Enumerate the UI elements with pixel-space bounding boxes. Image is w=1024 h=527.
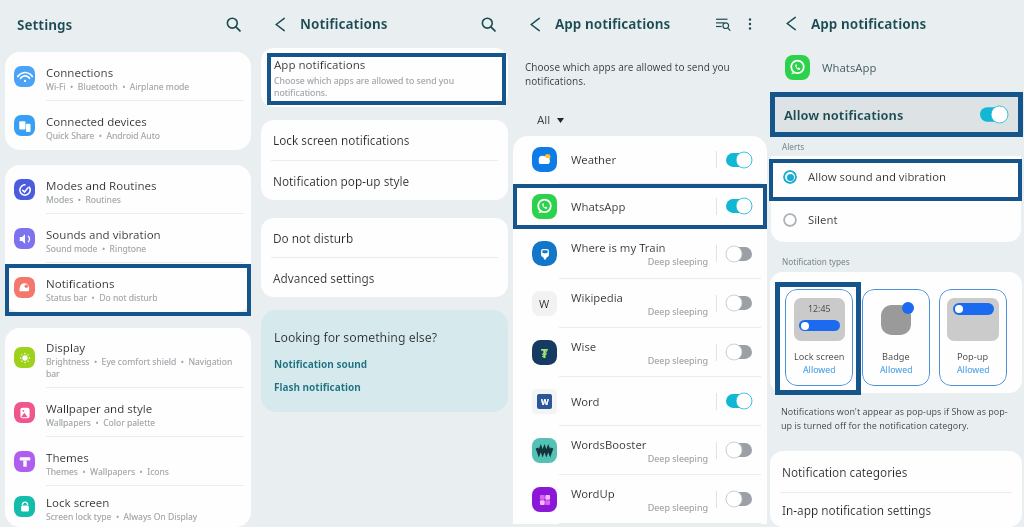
staticText: WhatsApp <box>822 60 877 75</box>
staticText: Wallpapers • Color palette <box>46 417 156 429</box>
button[interactable]: W <box>513 279 767 328</box>
button[interactable]: Notifications <box>5 263 251 312</box>
staticText: App notifications <box>811 15 927 33</box>
button[interactable]: Back <box>270 14 291 35</box>
other: Back <box>783 15 800 32</box>
staticText: Wise <box>571 339 597 354</box>
button[interactable]: Advanced settings <box>261 258 508 297</box>
button[interactable]: Off <box>726 246 752 262</box>
staticText: 12:45 <box>808 303 831 315</box>
button[interactable]: Search <box>223 14 244 35</box>
button[interactable]: On <box>980 106 1008 123</box>
staticText: All <box>537 112 551 128</box>
staticText: Notification pop-up style <box>273 173 410 189</box>
button[interactable]: Lock screen notifications <box>261 120 508 161</box>
staticText: Silent <box>808 212 838 227</box>
staticText: Choose which apps are allowed to send yo… <box>525 60 752 88</box>
button[interactable]: Back <box>781 13 802 34</box>
staticText: Allowed <box>957 364 990 376</box>
button[interactable]: Do not disturb <box>261 218 508 258</box>
staticText: W <box>539 296 550 311</box>
button[interactable]: ₮ <box>513 328 767 377</box>
button[interactable]: App notifications <box>261 48 508 107</box>
button[interactable]: Wallpaper and style <box>5 388 251 437</box>
staticText: Quick Share • Android Auto <box>46 130 160 142</box>
staticText: Deep sleeping <box>571 255 708 267</box>
other: Back <box>527 16 544 33</box>
staticText: Where is my Train <box>571 240 666 255</box>
staticText: Notifications won't appear as pop-ups if… <box>781 405 1009 432</box>
button[interactable]: On <box>726 198 752 214</box>
button[interactable]: Notification pop-up style <box>261 161 508 200</box>
staticText: Notifications <box>300 15 388 33</box>
other: Back <box>272 16 289 33</box>
staticText: Themes • Wallpapers • Icons <box>46 466 169 478</box>
button[interactable]: Allow sound and vibration <box>771 156 1021 197</box>
button[interactable]: Connections <box>5 52 251 101</box>
button[interactable]: WhatsApp <box>785 47 877 88</box>
button[interactable]: W <box>513 377 767 426</box>
button[interactable]: Connected devices <box>5 101 251 150</box>
button[interactable]: 12:45 <box>785 289 853 386</box>
button[interactable]: Display <box>5 328 251 388</box>
button[interactable]: Weather <box>513 136 767 184</box>
staticText: Screen lock type • Always On Display <box>46 511 198 523</box>
staticText: App notifications <box>274 57 366 73</box>
other: Search <box>225 16 242 33</box>
button[interactable]: Off <box>726 295 752 311</box>
staticText: Wallpaper and style <box>46 401 153 417</box>
staticText: In-app notification settings <box>782 502 932 518</box>
staticText: Allow sound and vibration <box>808 169 946 184</box>
button[interactable]: More options <box>740 14 760 34</box>
staticText: Modes and Routines <box>46 178 157 194</box>
staticText: Deep sleeping <box>571 354 708 366</box>
staticText: Deep sleeping <box>571 305 708 317</box>
staticText: Connected devices <box>46 114 147 130</box>
staticText: Alerts <box>782 141 805 152</box>
button[interactable]: Themes <box>5 437 251 486</box>
button[interactable]: Sort <box>713 14 733 34</box>
staticText: Advanced settings <box>273 270 375 286</box>
staticText: Weather <box>571 152 617 167</box>
staticText: Deep sleeping <box>571 452 708 464</box>
button[interactable]: Modes and Routines <box>5 165 251 214</box>
button[interactable]: Flash notification <box>274 380 361 394</box>
button[interactable]: Off <box>726 491 752 507</box>
staticText: Lock screen notifications <box>273 132 410 148</box>
staticText: Notification categories <box>782 464 908 480</box>
button[interactable]: On <box>726 152 752 168</box>
button[interactable]: Off <box>726 344 752 360</box>
button[interactable]: WordUp <box>513 475 767 524</box>
other: Search <box>480 16 497 33</box>
button[interactable]: Badge <box>862 289 930 386</box>
button[interactable]: Notification categories <box>770 451 1022 493</box>
button[interactable]: Lock screen <box>5 486 251 527</box>
button[interactable]: Allow notifications <box>771 92 1022 137</box>
staticText: W <box>541 396 549 407</box>
staticText: ₮ <box>541 345 548 361</box>
staticText: Choose which apps are allowed to send yo… <box>274 75 492 99</box>
staticText: Themes <box>46 450 89 466</box>
button[interactable]: WhatsApp <box>513 184 767 229</box>
button[interactable]: In-app notification settings <box>770 493 1022 527</box>
button[interactable]: WordsBooster <box>513 426 767 475</box>
button[interactable]: On <box>726 393 752 409</box>
staticText: Wikipedia <box>571 290 623 305</box>
staticText: Sounds and vibration <box>46 227 161 243</box>
button[interactable]: Where is my Train <box>513 229 767 279</box>
staticText: Settings <box>17 16 73 34</box>
button[interactable]: Search <box>478 14 499 35</box>
staticText: Allowed <box>880 364 913 376</box>
staticText: Badge <box>882 350 910 363</box>
staticText: Status bar • Do not disturb <box>46 292 158 304</box>
staticText: Do not disturb <box>273 230 354 246</box>
button[interactable]: Notification sound <box>274 357 367 371</box>
button[interactable]: All <box>534 112 567 128</box>
button[interactable]: Silent <box>771 197 1021 242</box>
button[interactable]: Back <box>525 14 546 35</box>
button[interactable]: Off <box>726 442 752 458</box>
button[interactable]: Pop-up <box>939 289 1007 386</box>
staticText: WhatsApp <box>571 199 626 214</box>
staticText: Deep sleeping <box>571 501 708 513</box>
button[interactable]: Sounds and vibration <box>5 214 251 263</box>
